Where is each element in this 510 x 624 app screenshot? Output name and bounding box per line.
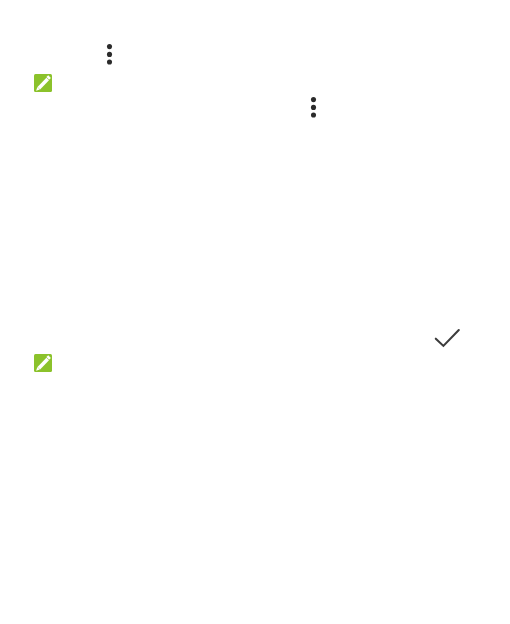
- button[interactable]: Edit: [34, 74, 52, 92]
- button[interactable]: Done: [431, 323, 463, 355]
- button[interactable]: More options: [302, 89, 325, 112]
- button[interactable]: More options: [98, 36, 121, 59]
- button[interactable]: Edit: [34, 354, 52, 372]
